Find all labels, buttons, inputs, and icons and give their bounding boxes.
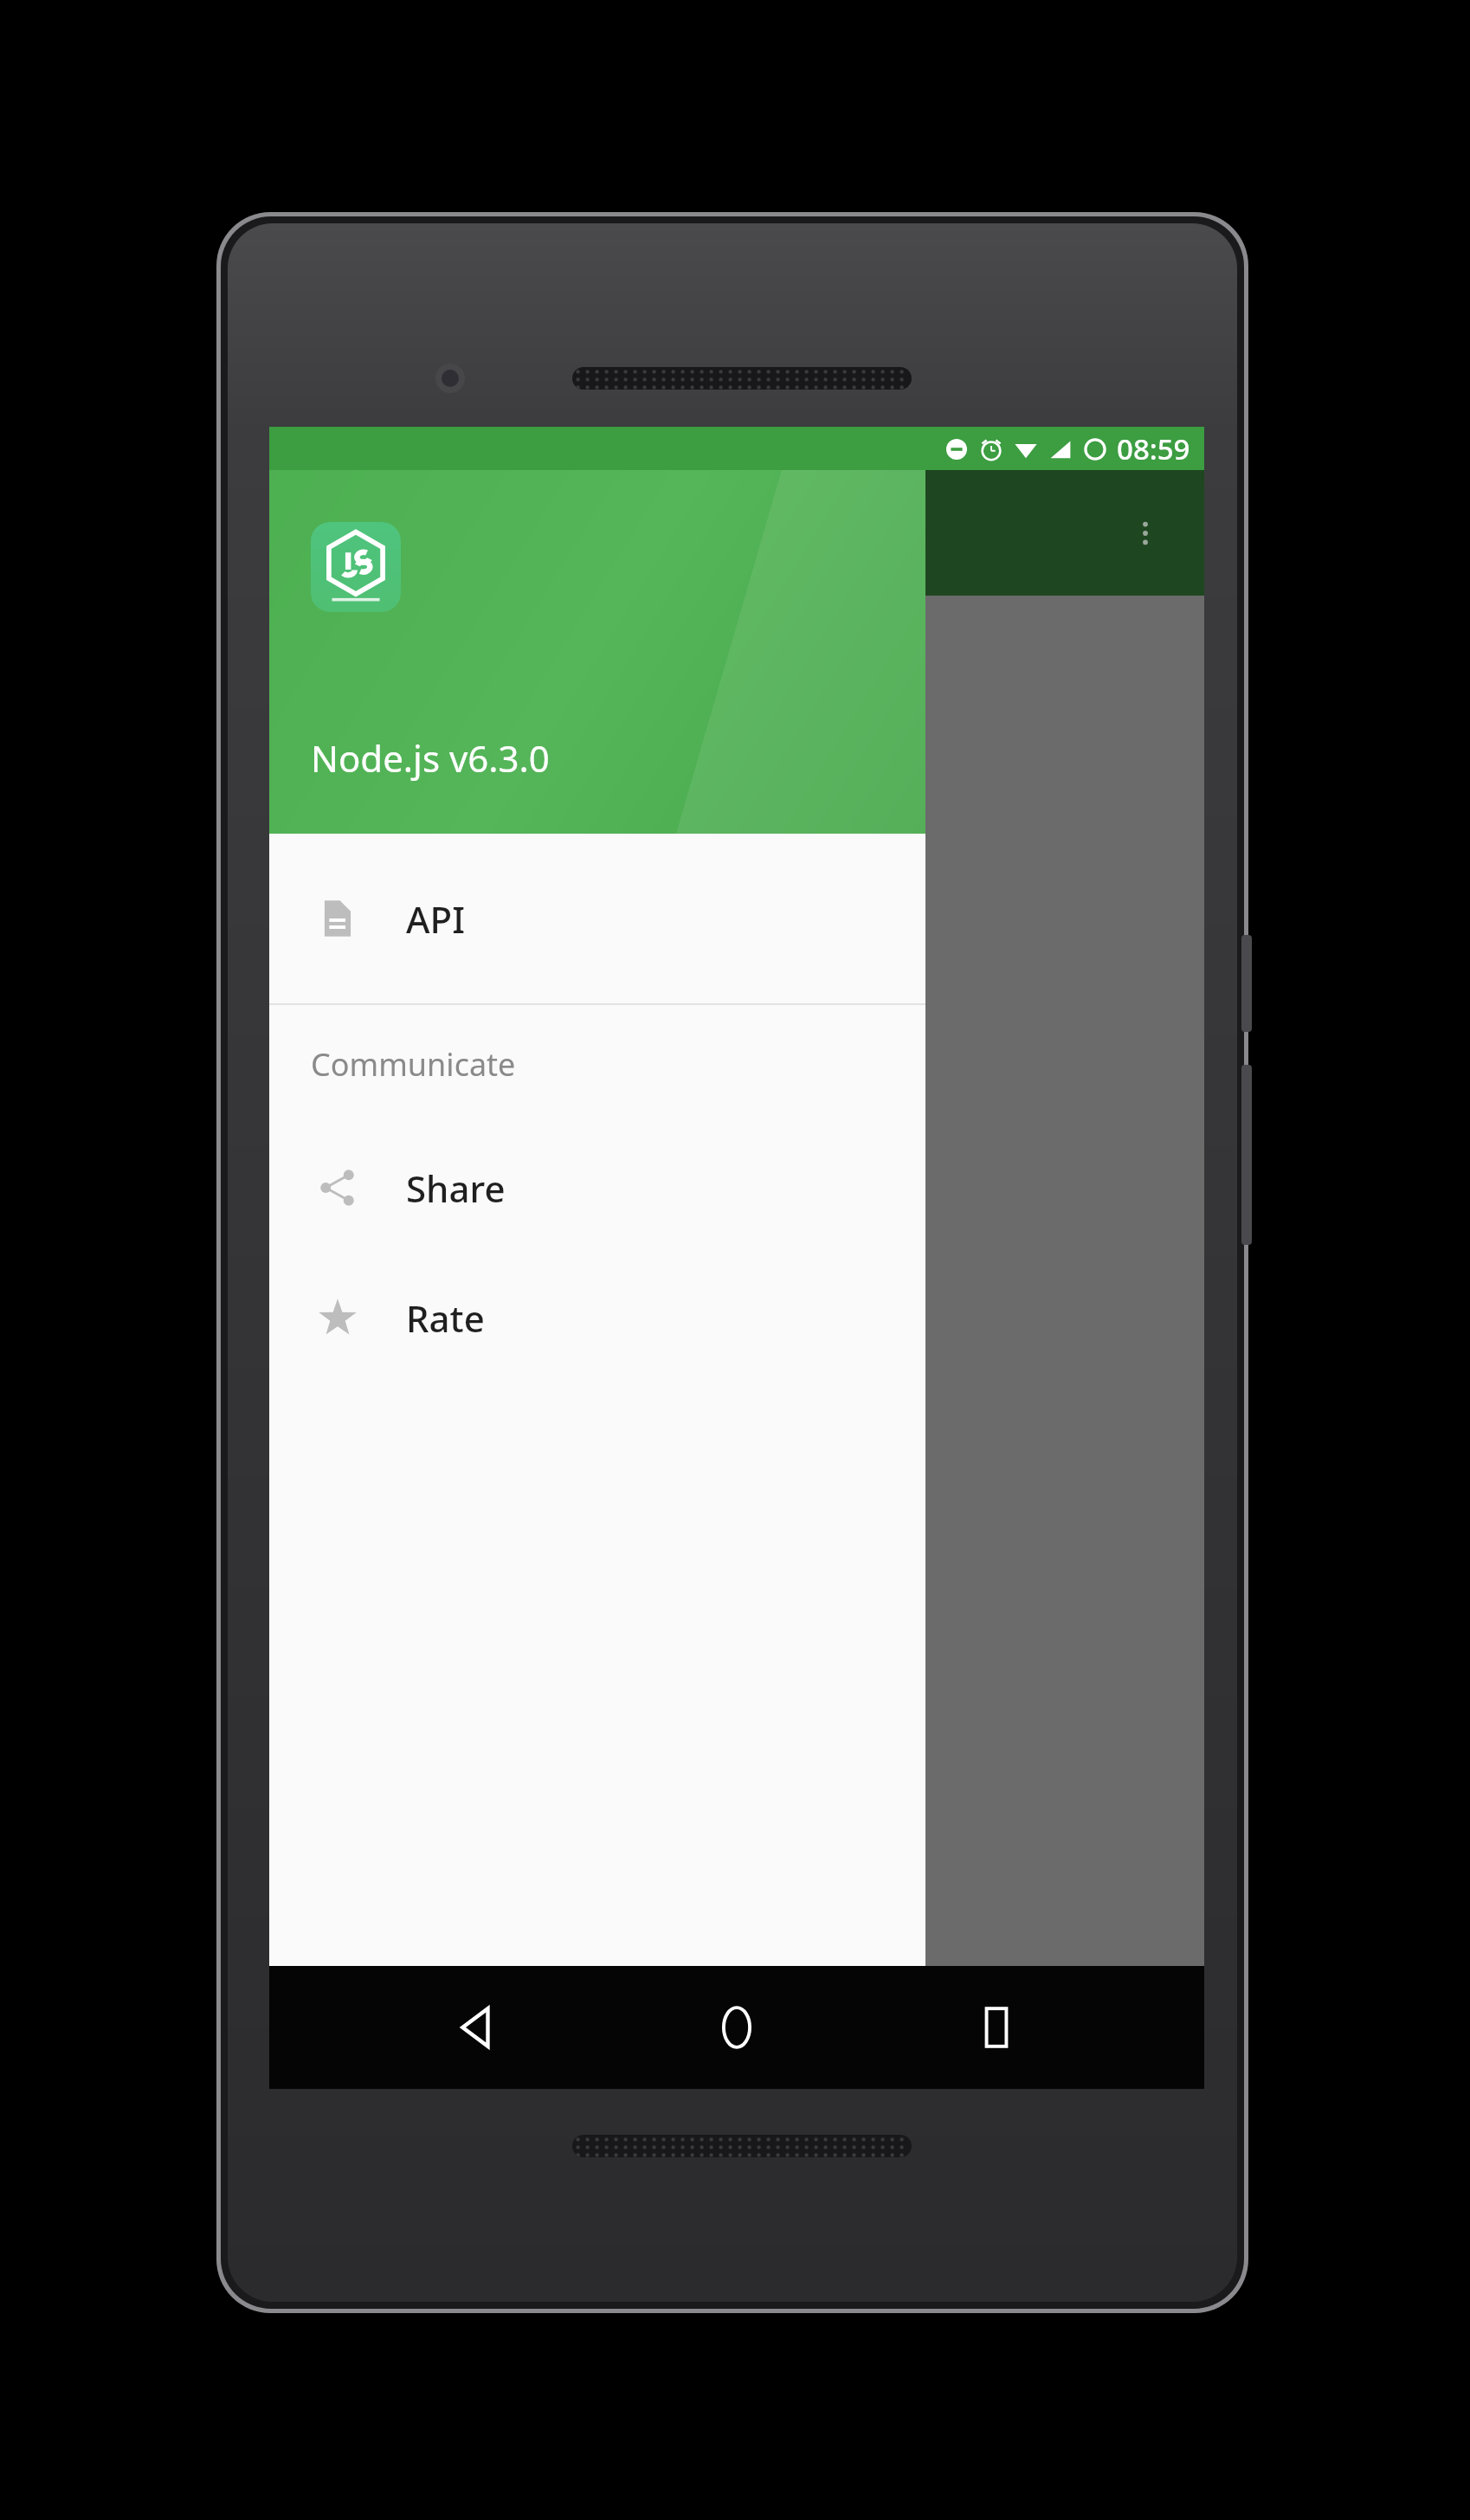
button[interactable]: Share <box>269 1123 925 1253</box>
staticText: Node.js v6.3.0 <box>311 733 550 783</box>
staticText: Communicate <box>311 1043 516 1086</box>
button[interactable]: Rate <box>269 1253 925 1382</box>
staticText: API <box>406 894 465 944</box>
button[interactable]: Home <box>685 1975 789 2079</box>
staticText: 08:59 <box>1117 429 1190 468</box>
staticText: Share <box>406 1163 506 1213</box>
button[interactable]: More options <box>1104 492 1187 575</box>
button[interactable]: API <box>269 834 925 1003</box>
staticText: Rate <box>406 1293 485 1343</box>
button[interactable]: Node.js v6.3.0 <box>269 427 925 834</box>
button[interactable]: Back <box>425 1975 529 2079</box>
button[interactable]: Recent apps <box>945 1975 1048 2079</box>
